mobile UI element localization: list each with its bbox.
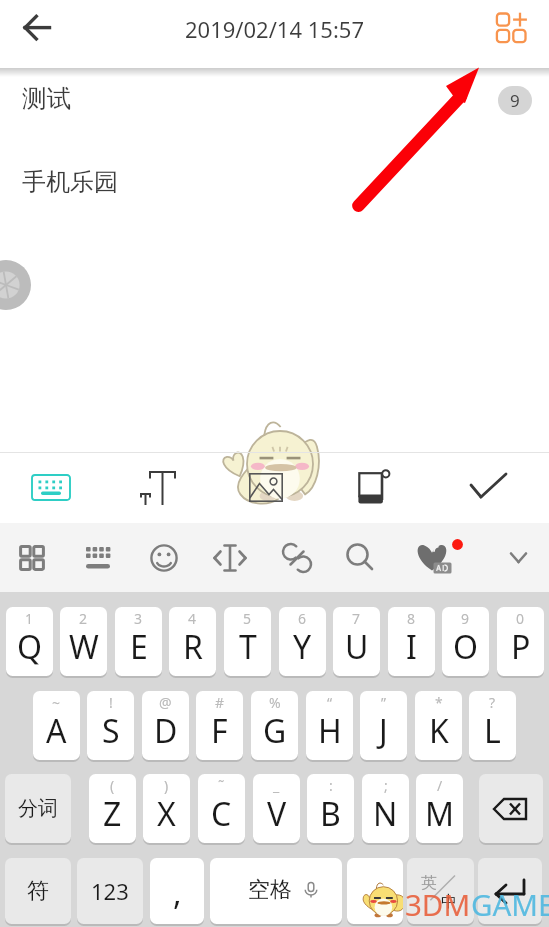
staticText: ˜ [218,776,225,795]
button[interactable]: Emoji [136,523,194,592]
staticText: : [329,776,333,795]
button[interactable]: 符 [5,858,71,924]
button[interactable]: ) [143,774,190,843]
staticText: V [267,792,287,836]
button[interactable]: 8 [388,607,435,676]
staticText: 9 [510,89,520,112]
staticText: D [154,709,178,753]
staticText: 空格 [248,876,292,904]
staticText: ) [164,776,169,795]
button[interactable]: Move cursor [202,523,260,592]
button[interactable]: 6 [279,607,326,676]
button[interactable]: Backspace [479,774,543,843]
button[interactable]: 123 [77,858,143,924]
staticText: _ [273,776,280,795]
staticText: 8 [407,609,416,628]
staticText: @ [159,693,172,712]
staticText: 中 [441,892,457,912]
button[interactable]: ; [362,774,409,843]
staticText: ” [381,693,387,712]
button[interactable]: _ [253,774,300,843]
button[interactable]: : [307,774,354,843]
staticText: 3DM [405,884,471,924]
button[interactable]: Collapse keyboard [490,523,548,592]
button[interactable]: ( [89,774,136,843]
staticText: M [425,792,455,836]
button[interactable]: Search [332,523,390,592]
button[interactable]: 分词 [5,774,71,843]
button[interactable]: Note paper [338,455,422,523]
button[interactable]: @ [142,691,189,760]
staticText: ; [384,776,388,795]
staticText: I [406,625,417,669]
button[interactable]: Keyboard [10,455,94,523]
staticText: 6 [298,609,307,628]
button[interactable]: 5 [224,607,271,676]
button[interactable]: Insert image [228,455,312,523]
staticText: 3 [134,609,143,628]
button[interactable]: 7 [333,607,380,676]
staticText: U [345,625,369,669]
button[interactable]: ˜ [198,774,245,843]
button[interactable]: 9 [498,86,532,115]
button[interactable]: Switch input language [407,858,474,924]
staticText: 英 [421,873,437,893]
staticText: F [211,709,228,753]
staticText: 7 [352,609,361,628]
button[interactable]: 3 [115,607,162,676]
button[interactable]: Back [12,0,64,58]
staticText: 符 [27,877,49,905]
staticText: 1 [25,609,34,628]
button[interactable]: Text format [118,455,202,523]
staticText: H [318,709,342,753]
button[interactable]: Apps [4,523,62,592]
staticText: K [429,709,449,753]
button[interactable]: % [251,691,298,760]
staticText: Z [103,792,122,836]
button[interactable]: ! [87,691,134,760]
button[interactable]: # [196,691,243,760]
staticText: / [437,776,443,795]
button[interactable]: Favourite stickers [398,523,464,592]
button[interactable]: 0 [497,607,544,676]
staticText: ? [489,693,496,712]
staticText: E [130,625,148,669]
staticText: 2 [79,609,88,628]
staticText: J [379,709,388,753]
button[interactable]: Clipboard [268,523,326,592]
button[interactable]: Enter [478,858,542,924]
button[interactable]: Keyboard layout [70,523,128,592]
button[interactable]: 空格 [210,858,342,924]
button[interactable]: 1 [6,607,53,676]
button[interactable]: 9 [442,607,489,676]
button[interactable]: ? [469,691,516,760]
button[interactable]: , [150,858,204,924]
button[interactable]: Add note widget [484,0,540,58]
button[interactable]: / [416,774,463,843]
button[interactable]: 4 [169,607,216,676]
button[interactable]: ~ [33,691,80,760]
button[interactable]: * [415,691,462,760]
staticText: A [46,709,67,753]
staticText: ( [110,776,115,795]
button[interactable]: Done [448,455,532,523]
staticText: , [173,871,182,915]
staticText: T [239,625,257,669]
staticText: ~ [52,693,61,712]
staticText: Y [293,625,312,669]
staticText: G [263,709,287,753]
button[interactable]: ” [360,691,407,760]
button[interactable]: “ [306,691,353,760]
button[interactable]: Sticker keyboard [347,858,403,924]
staticText: C [211,792,232,836]
staticText: N [373,792,398,836]
staticText: 2019/02/14 15:57 [185,14,364,44]
staticText: L [484,709,501,753]
staticText: R [183,625,203,669]
button[interactable]: 2 [60,607,107,676]
staticText: O [453,625,478,669]
staticText: 5 [243,609,252,628]
staticText: # [215,693,225,712]
staticText: ! [109,693,113,712]
staticText: 9 [461,609,470,628]
